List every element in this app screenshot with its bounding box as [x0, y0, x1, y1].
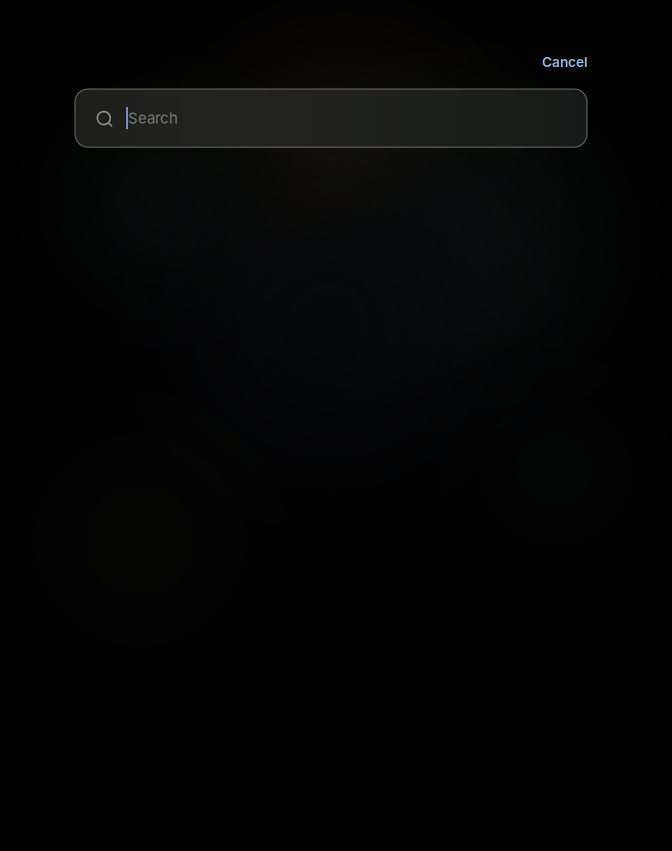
button[interactable]: Cancel [530, 44, 600, 80]
staticText: Search [128, 109, 178, 127]
staticText: Cancel [542, 54, 588, 70]
